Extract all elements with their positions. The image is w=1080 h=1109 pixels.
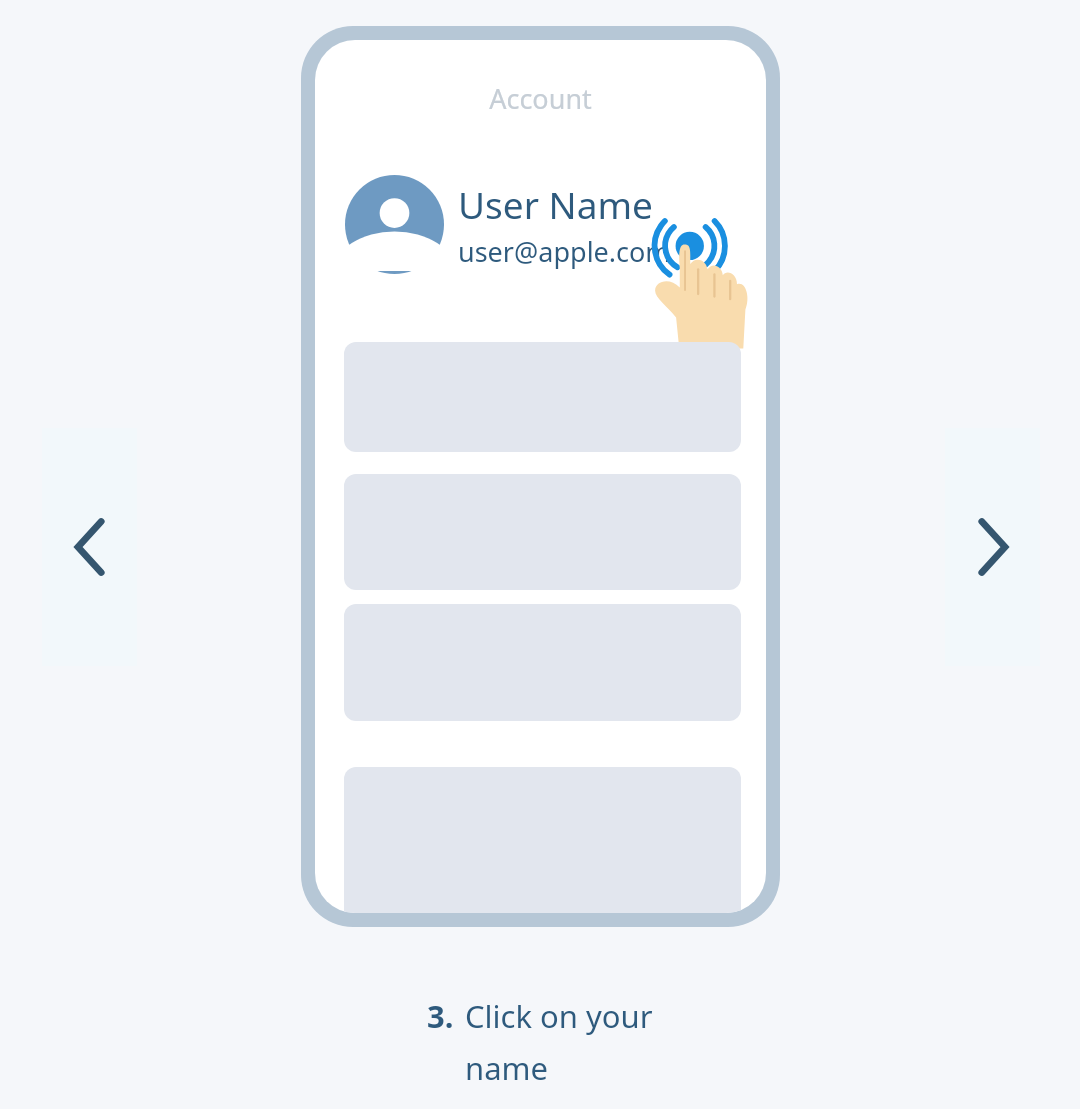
staticText: name [465,1047,549,1089]
staticText: Click on your [465,995,653,1037]
button[interactable]: Tap your name [653,216,758,346]
button[interactable]: Previous [42,428,137,666]
staticText: user@apple.com [458,233,671,270]
staticText: User Name [458,179,653,229]
staticText: 3. [427,995,454,1037]
button[interactable]: User Name [345,172,765,277]
button[interactable]: Next [945,428,1040,666]
staticText: Account [489,80,592,117]
